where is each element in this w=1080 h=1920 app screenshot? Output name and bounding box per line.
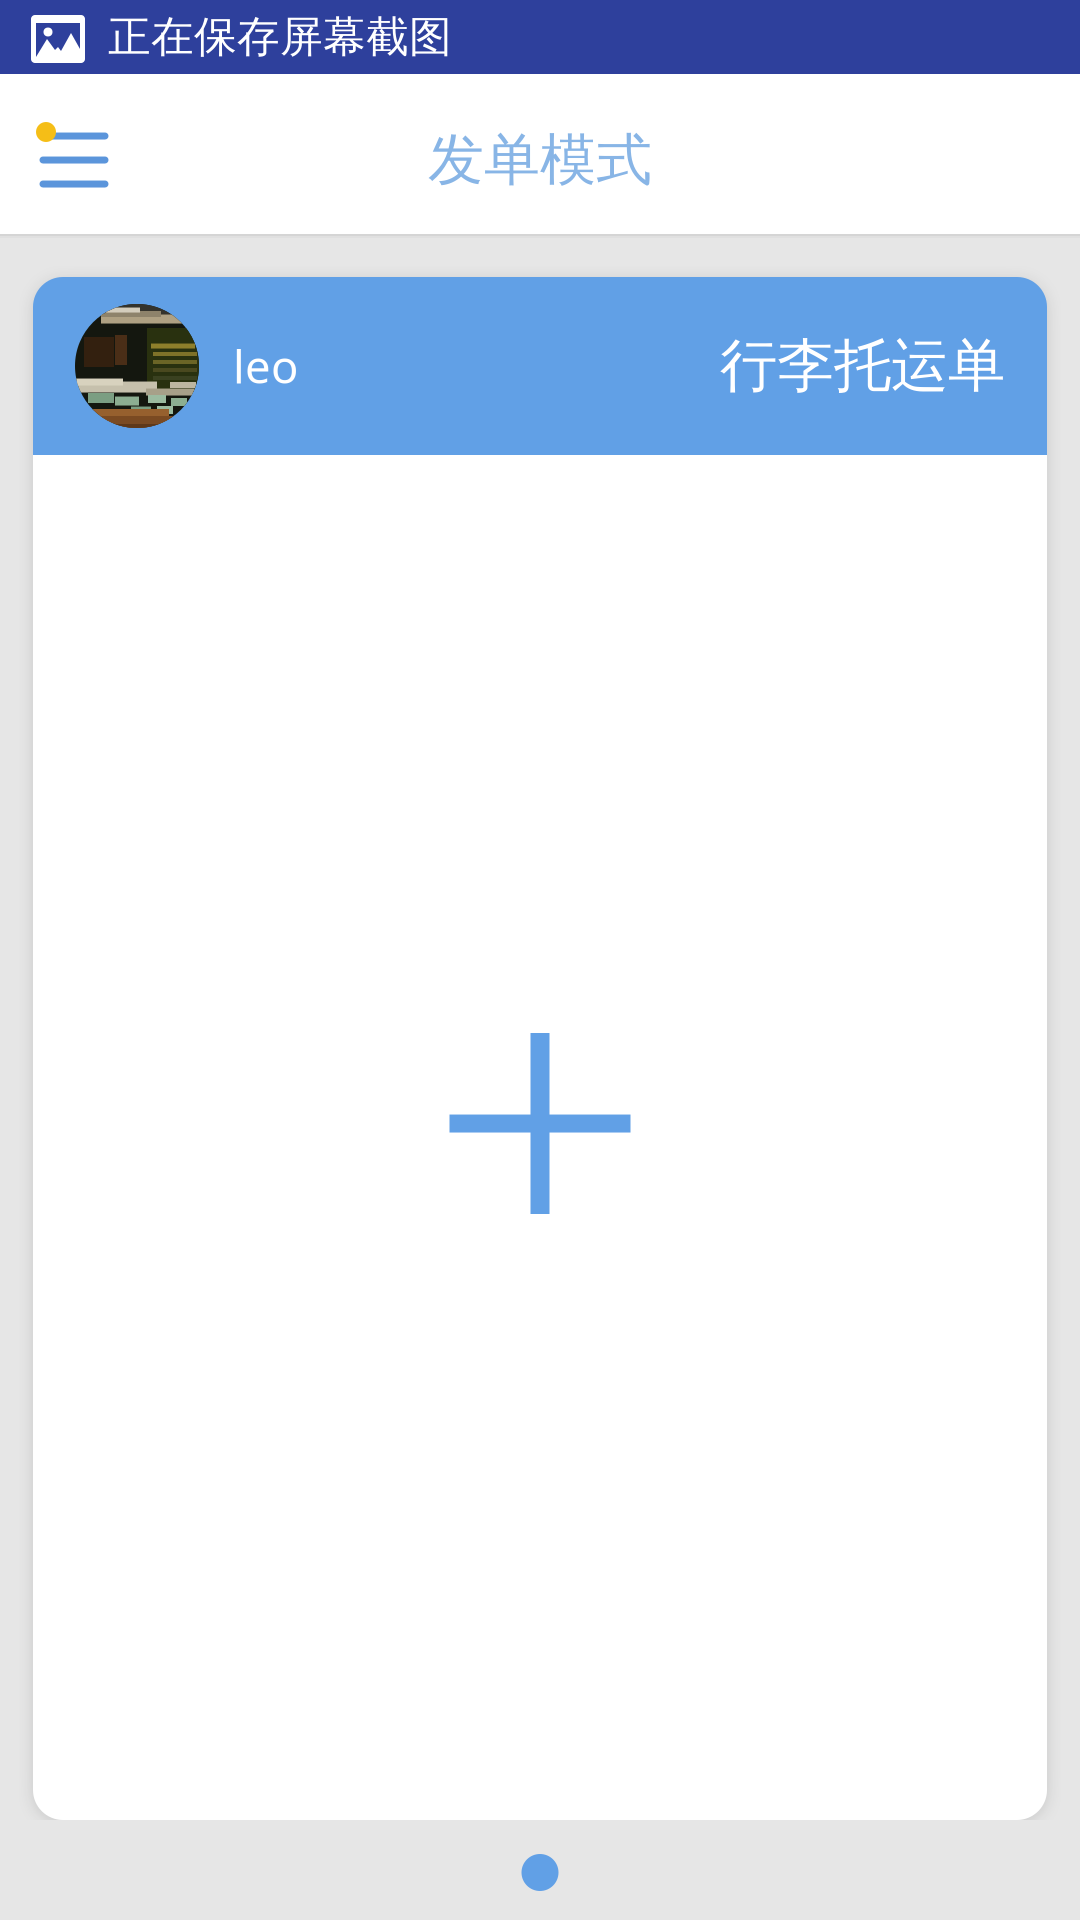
button[interactable]: leo [33, 277, 1047, 455]
button[interactable]: Menu [0, 74, 119, 234]
staticText: 发单模式 [428, 126, 652, 194]
staticText: 正在保存屏幕截图 [108, 11, 452, 63]
button[interactable]: Page 1 [521, 1854, 558, 1891]
staticText: leo [233, 336, 298, 396]
button[interactable]: New order [33, 455, 1047, 1820]
staticText: 行李托运单 [720, 331, 1005, 401]
